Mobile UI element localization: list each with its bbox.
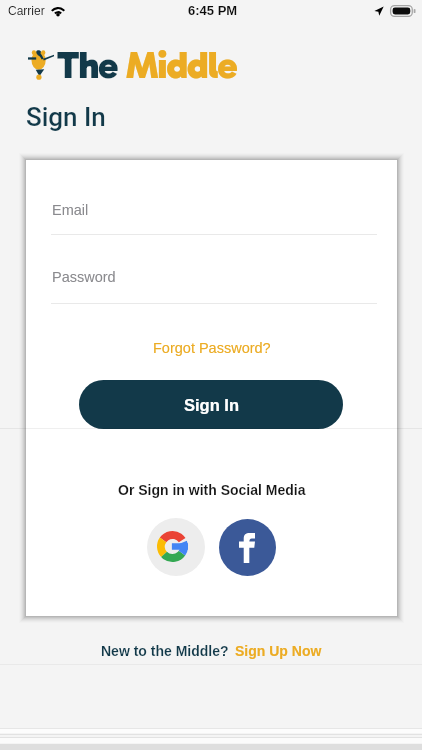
- staticText: 6:45 PM: [188, 3, 238, 18]
- staticText: Sign In: [26, 102, 106, 132]
- staticText: Password: [52, 269, 116, 285]
- button[interactable]: Sign in with Facebook: [219, 519, 276, 576]
- staticText: Or Sign in with Social Media: [118, 482, 306, 498]
- button[interactable]: Sign Up Now: [235, 643, 322, 659]
- staticText: Email: [52, 202, 89, 218]
- staticText: New to the Middle?: [101, 643, 229, 659]
- staticText: Middle: [126, 42, 237, 88]
- button[interactable]: Forgot Password?: [153, 340, 271, 356]
- staticText: Carrier: [8, 4, 45, 17]
- button[interactable]: Sign In: [79, 380, 343, 429]
- staticText: The: [57, 42, 126, 88]
- button[interactable]: Sign in with Google: [147, 518, 205, 576]
- staticText: Sign In: [184, 396, 239, 414]
